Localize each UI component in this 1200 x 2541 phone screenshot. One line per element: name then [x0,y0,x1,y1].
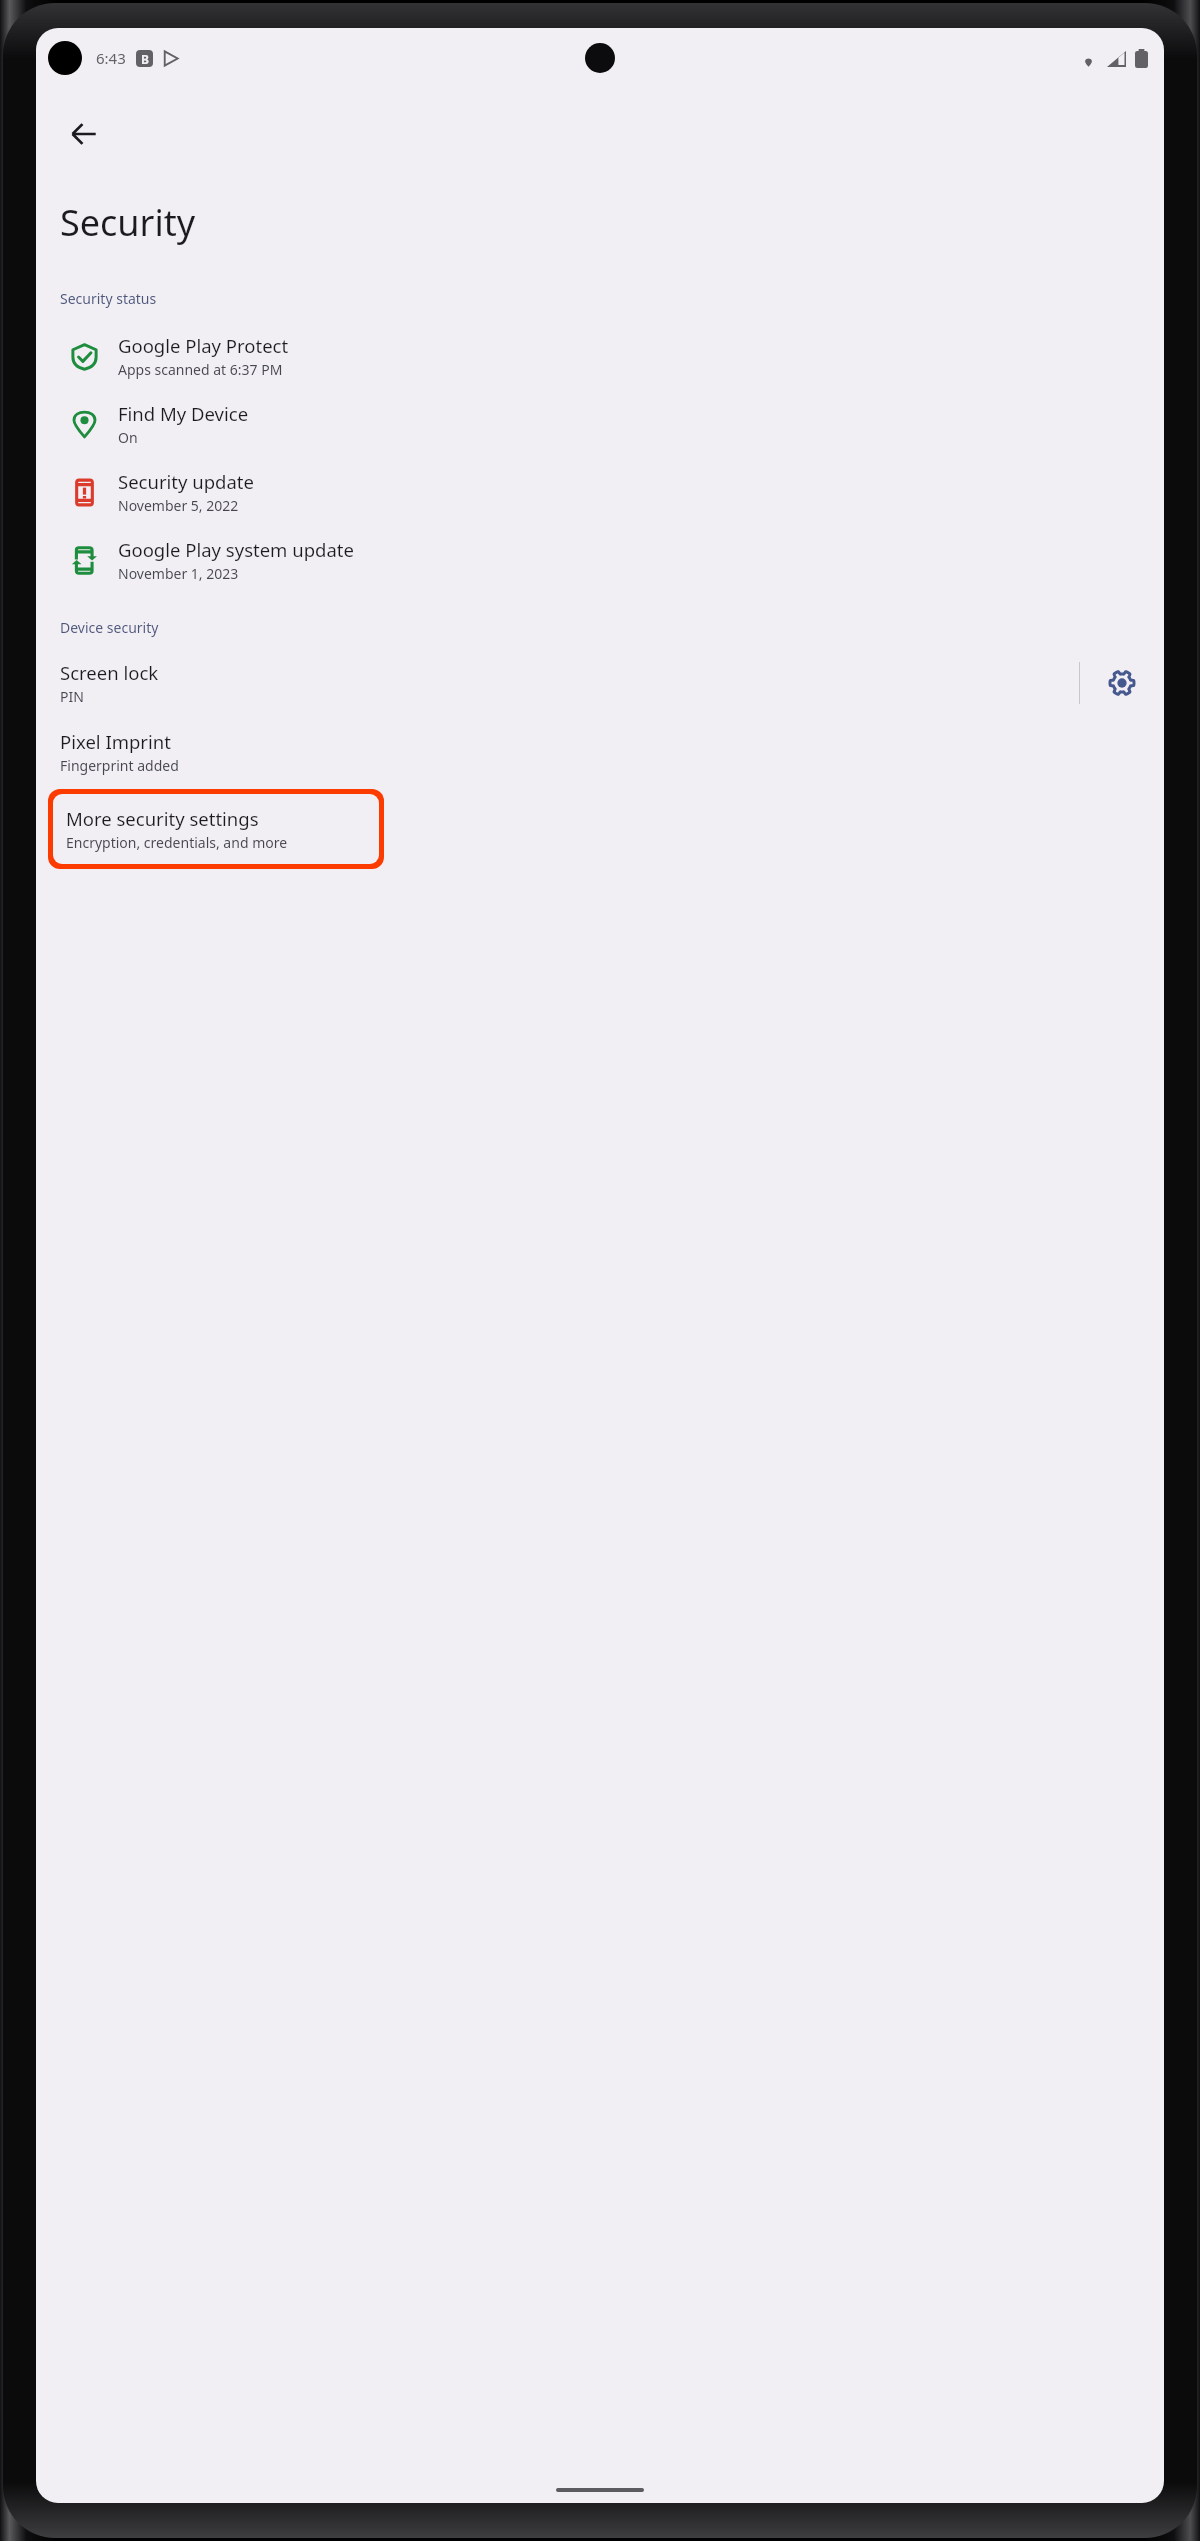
staticText: Fingerprint added [60,756,179,775]
staticText: On [118,428,138,447]
staticText: November 1, 2023 [118,564,239,583]
staticText: PIN [60,687,84,706]
button[interactable]: Screen lock [36,647,1079,719]
button[interactable]: Pixel Imprint [36,719,1164,785]
button[interactable]: Screen lock settings [1080,647,1164,719]
staticText: Find My Device [118,401,249,426]
staticText: Security status [60,289,157,308]
staticText: B [141,51,149,67]
staticText: Security update [118,469,254,494]
button[interactable]: Security update [36,458,1164,526]
staticText: Apps scanned at 6:37 PM [118,360,283,379]
button[interactable]: Find My Device [36,390,1164,458]
staticText: Google Play system update [118,537,354,562]
staticText: More security settings [66,806,259,831]
staticText: 6:43 [96,48,126,68]
button[interactable]: Back [56,106,112,162]
staticText: Google Play Protect [118,333,289,358]
staticText: November 5, 2022 [118,496,239,515]
button[interactable]: Google Play Protect [36,322,1164,390]
staticText: Device security [60,618,159,637]
staticText: Security [60,198,196,247]
staticText: Pixel Imprint [60,729,171,754]
staticText: Encryption, credentials, and more [66,833,288,852]
staticText: Screen lock [60,660,159,685]
button[interactable]: More security settings [53,794,379,864]
button[interactable]: Google Play system update [36,526,1164,594]
